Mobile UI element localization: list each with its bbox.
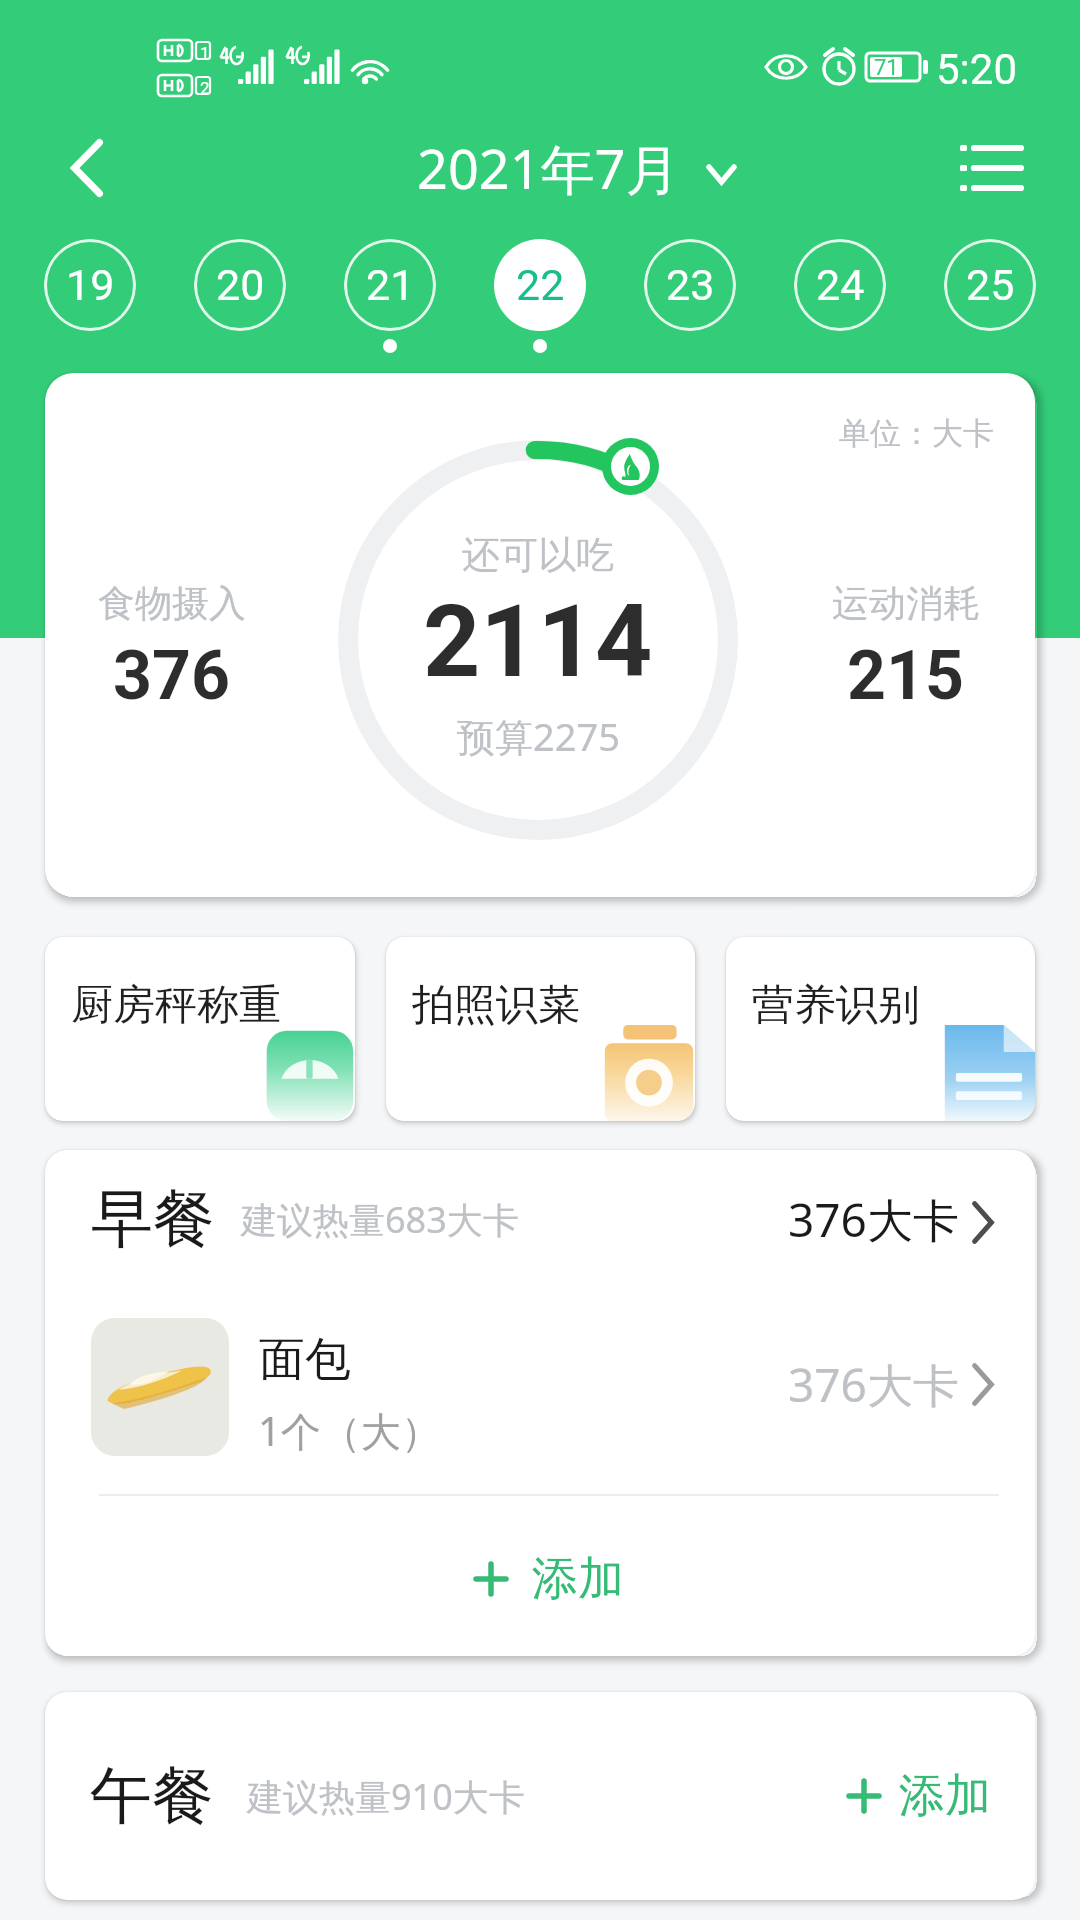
staticText: 单位：大卡 bbox=[839, 414, 994, 453]
button[interactable]: Menu bbox=[947, 125, 1033, 211]
staticText: 添加 bbox=[532, 1550, 624, 1608]
staticText: 早餐 bbox=[91, 1180, 215, 1258]
button[interactable]: 午餐 bbox=[45, 1692, 1035, 1900]
staticText: 建议热量683大卡 bbox=[241, 1195, 519, 1244]
staticText: 建议热量910大卡 bbox=[247, 1772, 525, 1821]
button[interactable]: 添加 bbox=[45, 1499, 1035, 1656]
button[interactable]: 营养识别 bbox=[726, 937, 1035, 1121]
staticText: 拍照识菜 bbox=[412, 979, 580, 1032]
button[interactable]: 19 bbox=[30, 239, 150, 339]
staticText: 运动消耗 bbox=[832, 580, 980, 627]
staticText: 午餐 bbox=[90, 1757, 214, 1835]
staticText: 21 bbox=[366, 260, 415, 310]
button[interactable]: 拍照识菜 bbox=[386, 937, 695, 1121]
staticText: 5:20 bbox=[936, 45, 1017, 94]
staticText: 25 bbox=[966, 260, 1015, 310]
button[interactable]: 2021年7月 bbox=[405, 123, 746, 213]
button[interactable]: 24 bbox=[780, 239, 900, 339]
staticText: 1 bbox=[200, 43, 210, 63]
staticText: 376 bbox=[113, 636, 231, 716]
staticText: 20 bbox=[216, 260, 265, 310]
staticText: 食物摄入 bbox=[98, 580, 246, 627]
button[interactable]: 22 bbox=[480, 239, 600, 353]
button[interactable]: 厨房秤称重 bbox=[45, 937, 355, 1121]
staticText: 22 bbox=[516, 260, 565, 310]
button[interactable]: 面包 bbox=[45, 1288, 1035, 1494]
staticText: 376大卡 bbox=[788, 1188, 959, 1251]
staticText: 2 bbox=[200, 78, 210, 98]
staticText: 厨房秤称重 bbox=[71, 979, 281, 1032]
staticText: 2021年7月 bbox=[417, 131, 680, 205]
button[interactable]: 早餐 bbox=[45, 1150, 1035, 1288]
staticText: 19 bbox=[66, 260, 115, 310]
button[interactable]: 25 bbox=[930, 239, 1050, 339]
staticText: 添加 bbox=[899, 1767, 991, 1825]
staticText: 24 bbox=[816, 260, 865, 310]
staticText: 71 bbox=[874, 55, 899, 81]
staticText: 预算2275 bbox=[457, 710, 620, 762]
staticText: 376大卡 bbox=[788, 1353, 959, 1416]
staticText: 营养识别 bbox=[752, 979, 920, 1032]
staticText: 面包 bbox=[259, 1331, 351, 1389]
staticText: 2114 bbox=[423, 583, 653, 700]
staticText: 215 bbox=[847, 636, 965, 716]
button[interactable]: 20 bbox=[180, 239, 300, 339]
staticText: 1个（大） bbox=[258, 1403, 441, 1458]
button[interactable]: 21 bbox=[330, 239, 450, 353]
button[interactable]: Back bbox=[45, 126, 129, 210]
button[interactable]: 23 bbox=[630, 239, 750, 339]
staticText: 还可以吃 bbox=[462, 531, 614, 579]
staticText: 23 bbox=[666, 260, 715, 310]
button[interactable]: 添加 bbox=[849, 1753, 991, 1839]
